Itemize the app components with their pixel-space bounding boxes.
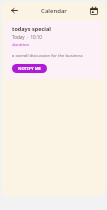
button[interactable]: NOTIFY ME (12, 64, 47, 73)
button[interactable]: todays special (5, 20, 102, 79)
staticText: duration (12, 42, 30, 48)
staticText: NOTIFY ME (18, 66, 41, 72)
button[interactable]: duration (12, 42, 30, 48)
staticText: a overall discussion for the business (12, 53, 83, 59)
button[interactable]: Calendar (87, 4, 100, 17)
button[interactable]: Back (8, 4, 21, 17)
staticText: Today · 10:10 (12, 34, 42, 40)
staticText: Calendar (41, 7, 67, 15)
staticText: todays special (12, 25, 51, 32)
